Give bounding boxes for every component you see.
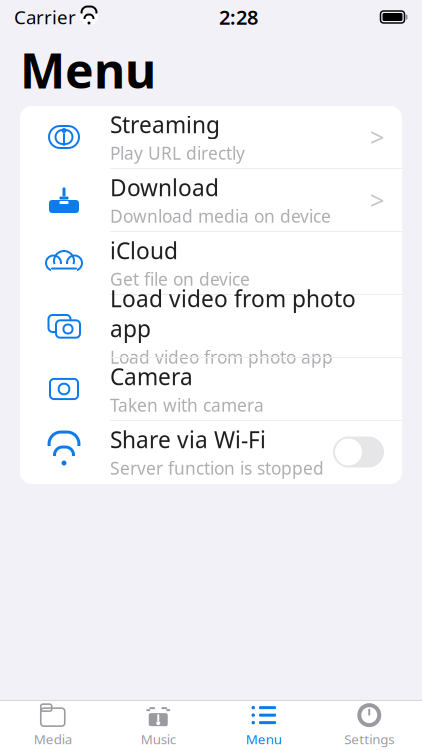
button[interactable]: Menu [211,697,316,750]
staticText: Download [110,172,219,202]
staticText: Settings [344,730,394,748]
staticText: Carrier [14,5,76,29]
button[interactable]: Music [105,697,211,750]
button[interactable]: Media [0,697,105,750]
staticText: Music [141,730,176,748]
button[interactable]: Share via Wi-Fi [20,421,402,484]
button[interactable]: Download [20,169,402,232]
staticText: Share via Wi-Fi [110,424,266,454]
staticText: Download media on device [110,204,331,227]
button[interactable]: Share via Wi-Fi [333,436,384,467]
staticText: Play URL directly [110,141,245,164]
staticText: Load video from photo app [110,346,333,369]
staticText: Camera [110,361,193,391]
staticText: Load video from photo app [110,283,356,344]
staticText: Menu [20,38,156,102]
staticText: 2:28 [219,4,258,30]
button[interactable]: Streaming [20,106,402,169]
staticText: Menu [246,730,282,748]
staticText: > [370,183,384,217]
staticText: Get file on device [110,267,250,290]
staticText: Media [34,730,72,748]
staticText: > [370,120,384,154]
button[interactable]: Load video from photo app [20,295,402,358]
staticText: Streaming [110,109,220,139]
button[interactable]: Camera [20,358,402,421]
staticText: Server function is stopped [110,456,324,479]
staticText: iCloud [110,235,178,265]
staticText: Taken with camera [110,393,264,416]
button[interactable]: Settings [316,697,422,750]
button[interactable]: iCloud [20,232,402,295]
